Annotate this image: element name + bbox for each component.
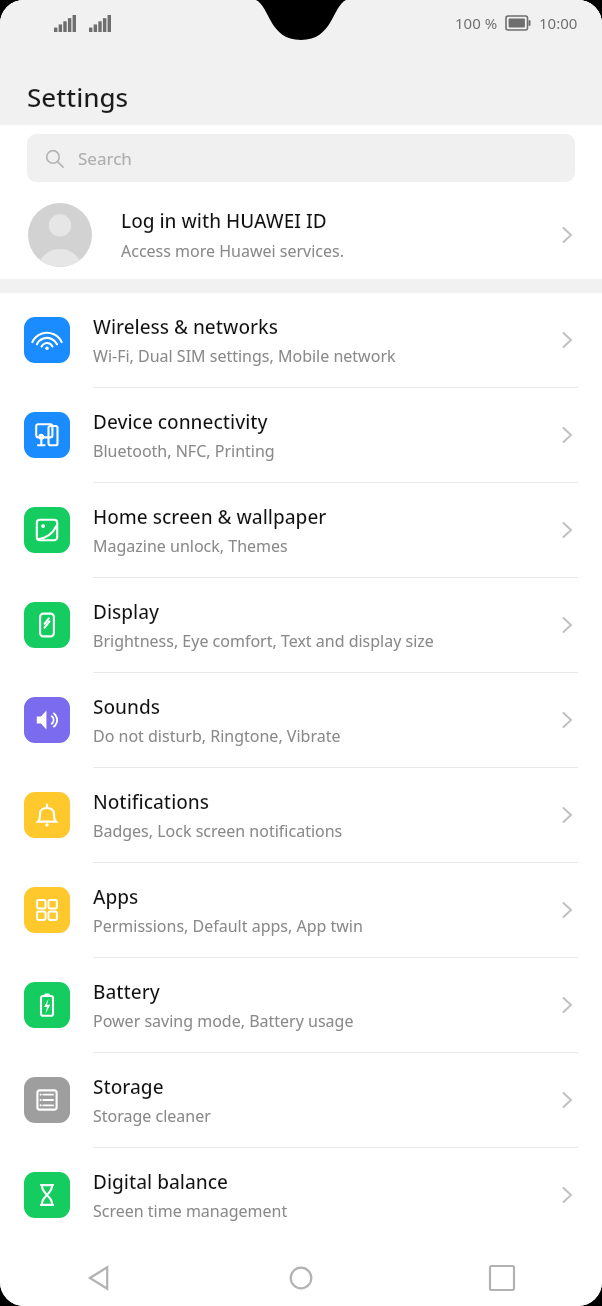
button[interactable]: Battery xyxy=(0,958,602,1052)
staticText: Storage xyxy=(93,1074,164,1100)
button[interactable]: Home xyxy=(200,1250,401,1306)
staticText: Digital balance xyxy=(93,1169,228,1195)
staticText: Brightness, Eye comfort, Text and displa… xyxy=(93,630,434,652)
button[interactable]: Apps xyxy=(0,863,602,957)
button[interactable]: Notifications xyxy=(0,768,602,862)
staticText: Device connectivity xyxy=(93,409,268,435)
button[interactable]: Search xyxy=(27,134,575,182)
staticText: Sounds xyxy=(93,694,160,720)
staticText: Notifications xyxy=(93,789,210,815)
button[interactable]: Log in with HUAWEI ID xyxy=(0,191,602,279)
button[interactable]: Home screen & wallpaper xyxy=(0,483,602,577)
staticText: Wireless & networks xyxy=(93,314,278,340)
staticText: Power saving mode, Battery usage xyxy=(93,1010,354,1032)
staticText: Settings xyxy=(27,79,129,114)
staticText: Bluetooth, NFC, Printing xyxy=(93,440,275,462)
button[interactable]: Back xyxy=(0,1250,200,1306)
button[interactable]: Device connectivity xyxy=(0,388,602,482)
staticText: Battery xyxy=(93,979,160,1005)
staticText: Wi-Fi, Dual SIM settings, Mobile network xyxy=(93,345,396,367)
staticText: Search xyxy=(78,147,132,170)
staticText: 100 % xyxy=(455,13,498,33)
staticText: Log in with HUAWEI ID xyxy=(121,208,327,234)
button[interactable]: Sounds xyxy=(0,673,602,767)
staticText: Apps xyxy=(93,884,139,910)
button[interactable]: Digital balance xyxy=(0,1148,602,1242)
staticText: Do not disturb, Ringtone, Vibrate xyxy=(93,725,341,747)
button[interactable]: Display xyxy=(0,578,602,672)
button[interactable]: Recent apps xyxy=(401,1250,602,1306)
button[interactable]: Storage xyxy=(0,1053,602,1147)
staticText: Display xyxy=(93,599,160,625)
button[interactable]: Wireless & networks xyxy=(0,293,602,387)
staticText: Magazine unlock, Themes xyxy=(93,535,288,557)
staticText: Badges, Lock screen notifications xyxy=(93,820,343,842)
staticText: Screen time management xyxy=(93,1200,288,1222)
staticText: Access more Huawei services. xyxy=(121,240,345,262)
staticText: Permissions, Default apps, App twin xyxy=(93,915,363,937)
staticText: 10:00 xyxy=(539,13,578,33)
staticText: Storage cleaner xyxy=(93,1105,211,1127)
staticText: Home screen & wallpaper xyxy=(93,504,327,530)
